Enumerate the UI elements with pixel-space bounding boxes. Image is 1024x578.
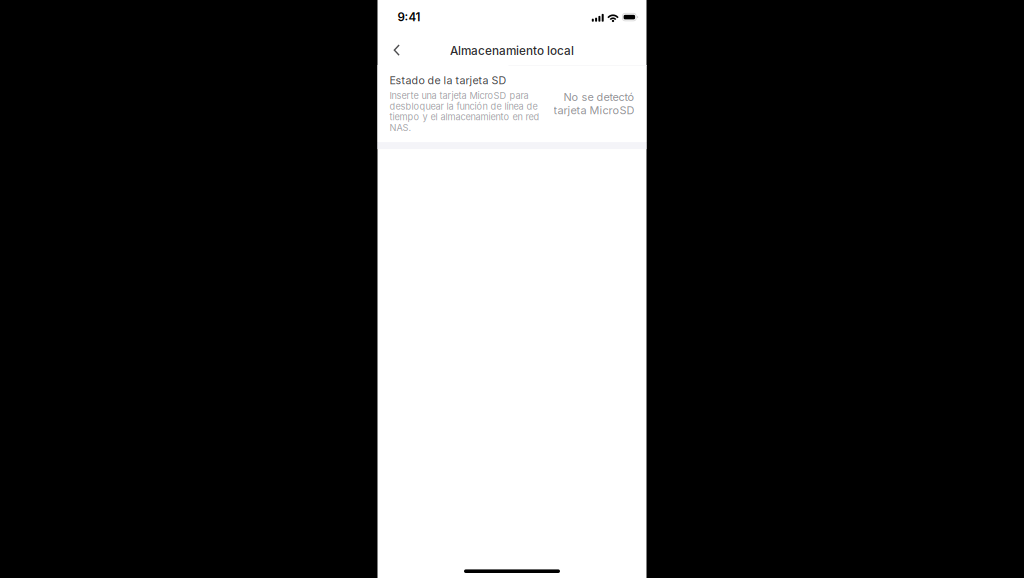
button[interactable]: Back [383, 36, 409, 64]
staticText: Almacenamiento local [450, 44, 574, 58]
staticText: No se detectó tarjeta MicroSD [553, 90, 634, 117]
staticText: 9:41 [397, 10, 420, 24]
staticText: Estado de la tarjeta SD [389, 74, 506, 87]
staticText: Inserte una tarjeta MicroSD para desbloq… [389, 90, 539, 133]
button[interactable]: Estado de la tarjeta SD [377, 65, 646, 142]
